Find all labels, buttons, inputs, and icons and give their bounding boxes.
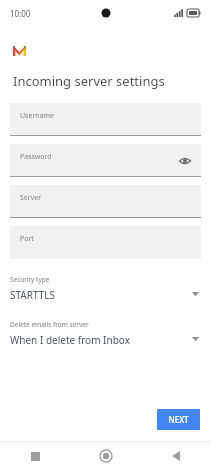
button[interactable]: Delete emails from server [10, 316, 201, 357]
staticText: Security type [10, 275, 50, 284]
button[interactable]: Security type [10, 271, 201, 312]
button[interactable]: Username [10, 103, 201, 136]
staticText: When I delete from Inbox [10, 333, 130, 347]
button[interactable]: Home [71, 442, 141, 470]
button[interactable]: Port [10, 226, 201, 259]
button[interactable]: Back [141, 442, 211, 470]
button[interactable]: Password [10, 144, 201, 177]
staticText: Delete emails from server [10, 320, 89, 329]
staticText: Username [20, 111, 55, 121]
button[interactable]: NEXT [157, 409, 200, 430]
staticText: Port [20, 234, 34, 244]
staticText: NEXT [168, 414, 189, 425]
staticText: 10:00 [10, 8, 31, 19]
staticText: Incoming server settings [13, 72, 165, 90]
staticText: Server [20, 193, 42, 203]
button[interactable]: Recents [0, 442, 71, 470]
staticText: Password [20, 152, 52, 162]
staticText: STARTTLS [10, 288, 56, 302]
button[interactable]: Show password [177, 153, 193, 169]
button[interactable]: Server [10, 185, 201, 218]
